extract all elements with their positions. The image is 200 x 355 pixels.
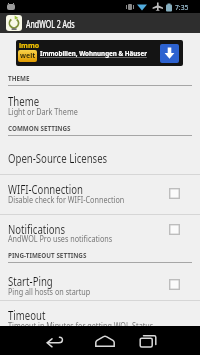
- button[interactable]: [169, 224, 180, 235]
- staticText: immo: [19, 41, 40, 51]
- staticText: welt: [20, 51, 36, 61]
- staticText: Disable check for WIFI-Connection: [8, 194, 124, 206]
- staticText: 7:35: [175, 2, 188, 12]
- staticText: Timeout: [8, 307, 46, 323]
- button[interactable]: [0, 267, 200, 298]
- staticText: Start-Ping: [8, 273, 53, 289]
- staticText: Immobilien, Wohnungen & Häuser: [40, 49, 148, 59]
- staticText: COMMON SETTINGS: [8, 123, 71, 133]
- staticText: THEME: [8, 73, 30, 83]
- button[interactable]: [44, 330, 68, 352]
- button[interactable]: [0, 175, 200, 206]
- staticText: Notifications: [8, 221, 66, 237]
- button[interactable]: [93, 330, 117, 352]
- button[interactable]: [0, 87, 200, 118]
- staticText: WIFI-Connection: [8, 181, 83, 197]
- button[interactable]: [0, 246, 200, 264]
- button[interactable]: [0, 215, 200, 245]
- staticText: AndWOL 2 Ads: [26, 17, 75, 31]
- button[interactable]: [0, 301, 200, 332]
- staticText: Timeout in Minutes for getting WOL-Statu…: [8, 320, 153, 332]
- button[interactable]: [169, 279, 180, 290]
- staticText: AndWOL Pro uses notifications: [8, 233, 113, 245]
- staticText: Light or Dark Theme: [8, 106, 79, 118]
- button[interactable]: [169, 188, 180, 199]
- staticText: Ping all hosts on startup: [8, 286, 90, 298]
- button[interactable]: [0, 144, 200, 168]
- staticText: Open-Source Licenses: [8, 150, 108, 166]
- button[interactable]: [0, 69, 200, 87]
- staticText: Theme: [8, 93, 39, 109]
- button[interactable]: [136, 330, 160, 352]
- button[interactable]: immo: [16, 40, 183, 66]
- button[interactable]: [0, 119, 200, 137]
- staticText: PING-TIMEOUT SETTINGS: [8, 250, 87, 260]
